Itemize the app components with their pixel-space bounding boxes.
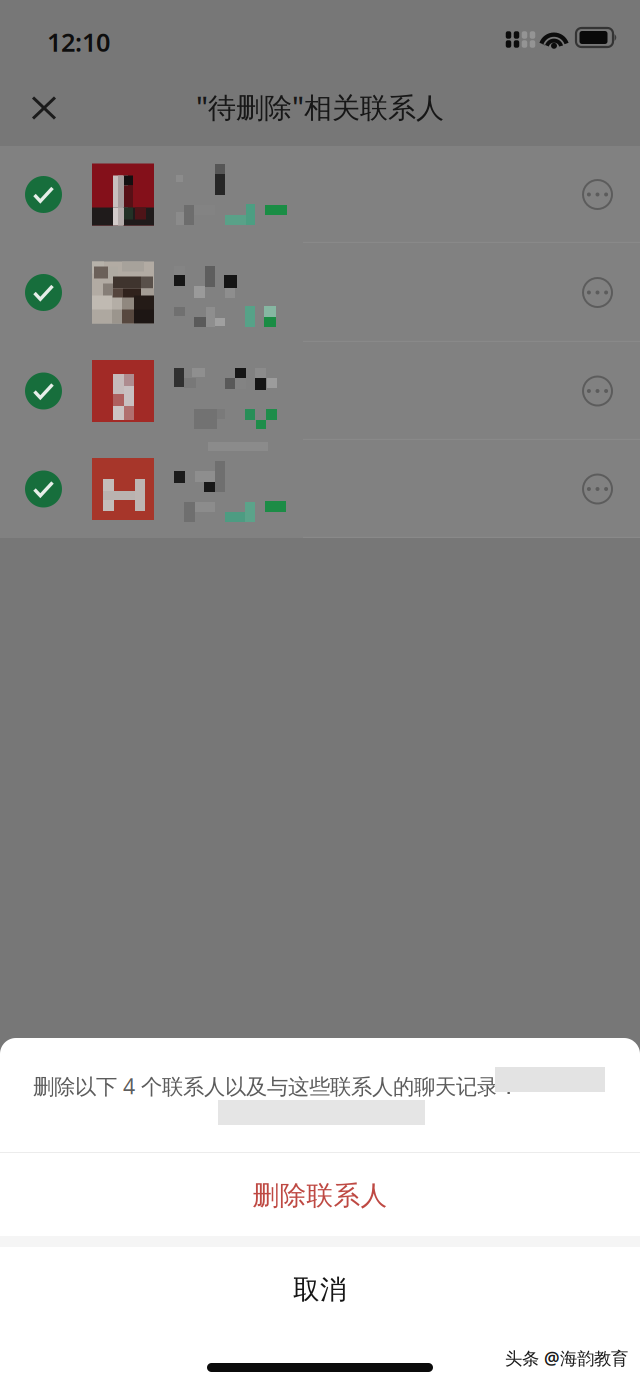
button[interactable]: 取消: [0, 1247, 640, 1332]
button[interactable]: [0, 440, 640, 538]
staticText: 删除联系人: [252, 1179, 387, 1212]
staticText: 头条 @海韵教育: [505, 1346, 628, 1369]
staticText: "待删除"相关联系人: [196, 88, 444, 126]
button[interactable]: Close: [13, 77, 75, 139]
staticText: 删除以下 4 个联系人以及与这些联系人的聊天记录：: [33, 1072, 519, 1100]
staticText: 取消: [293, 1273, 347, 1306]
button[interactable]: 删除联系人: [0, 1153, 640, 1238]
button[interactable]: [0, 243, 640, 342]
button[interactable]: [0, 342, 640, 440]
button[interactable]: [0, 146, 640, 243]
staticText: 12:10: [47, 25, 110, 59]
